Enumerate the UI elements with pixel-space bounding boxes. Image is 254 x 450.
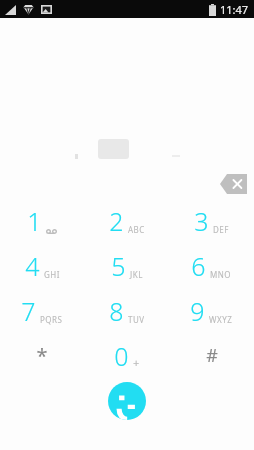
staticText: 1 (27, 204, 42, 238)
button[interactable]: * (0, 333, 84, 378)
button[interactable]: 9 (169, 288, 254, 333)
staticText: 7 (21, 294, 36, 328)
staticText: WXYZ (209, 314, 233, 325)
staticText: GHI (44, 269, 60, 280)
button[interactable]: 3 (169, 198, 254, 243)
staticText: ABC (128, 224, 145, 235)
staticText: DEF (213, 224, 229, 235)
staticText: + (133, 355, 140, 370)
staticText: JKL (130, 269, 143, 280)
staticText: PQRS (40, 314, 63, 325)
staticText: * (36, 342, 48, 369)
button[interactable]: 0 (84, 333, 169, 378)
staticText: 8 (109, 294, 124, 328)
staticText: 0 (114, 339, 129, 373)
button[interactable]: 6 (169, 243, 254, 288)
button[interactable]: 1 (0, 198, 84, 243)
button[interactable]: 4 (0, 243, 84, 288)
staticText: 3 (194, 204, 209, 238)
button[interactable]: Delete (218, 173, 248, 195)
button[interactable]: 8 (84, 288, 169, 333)
staticText: 4 (25, 249, 40, 283)
button[interactable]: 2 (84, 198, 169, 243)
staticText: # (206, 343, 218, 368)
staticText: 11:47 (220, 2, 249, 17)
button[interactable]: 5 (84, 243, 169, 288)
button[interactable]: # (169, 333, 254, 378)
staticText: 6 (191, 249, 206, 283)
staticText: MNO (210, 269, 232, 280)
button[interactable]: Call (108, 382, 146, 420)
button[interactable]: 7 (0, 288, 84, 333)
staticText: 2 (109, 204, 124, 238)
staticText: 9 (190, 294, 205, 328)
staticText: 5 (111, 249, 126, 283)
staticText: TUV (128, 314, 145, 325)
